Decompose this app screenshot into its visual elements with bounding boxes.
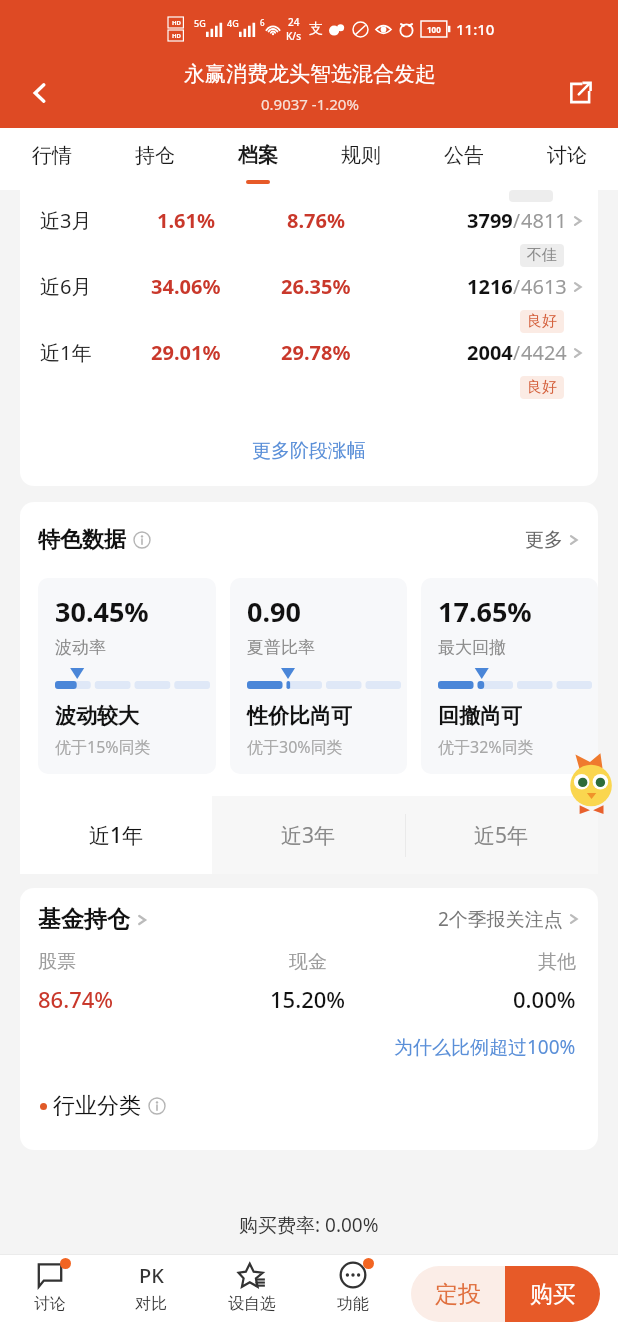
- staticText: 最大回撤: [438, 637, 506, 658]
- button[interactable]: 更多阶段涨幅: [20, 400, 598, 486]
- staticText: 17.65%: [438, 593, 532, 630]
- staticText: 4613: [521, 273, 567, 300]
- staticText: 波动较大: [55, 703, 139, 729]
- button[interactable]: 行情: [0, 128, 103, 190]
- button[interactable]: 规则: [309, 128, 412, 190]
- staticText: 4G: [227, 17, 239, 29]
- staticText: /: [513, 340, 521, 366]
- button[interactable]: 定投: [411, 1266, 505, 1322]
- button[interactable]: 更多: [525, 528, 580, 552]
- staticText: 0.00%: [513, 984, 576, 1014]
- button[interactable]: 讨论: [0, 1255, 100, 1332]
- staticText: 优于15%同类: [55, 736, 151, 758]
- staticText: 30.45%: [55, 593, 149, 630]
- staticText: 29.78%: [281, 339, 351, 366]
- staticText: 基金持仓: [38, 905, 130, 934]
- staticText: /: [513, 274, 521, 300]
- staticText: 2个季报关注点: [438, 906, 563, 932]
- staticText: 2004: [467, 339, 513, 366]
- button[interactable]: 设自选: [201, 1255, 302, 1332]
- staticText: 5G: [194, 17, 206, 29]
- staticText: HD: [172, 32, 181, 40]
- staticText: PK: [139, 1262, 164, 1289]
- staticText: 近3年: [281, 821, 336, 850]
- button[interactable]: 功能: [302, 1255, 403, 1332]
- button[interactable]: 讨论: [515, 128, 618, 190]
- staticText: 良好: [527, 378, 557, 397]
- button[interactable]: PK: [100, 1255, 201, 1332]
- staticText: 性价比尚可: [247, 703, 352, 729]
- button[interactable]: 近3月: [20, 202, 598, 268]
- staticText: 近5年: [474, 821, 529, 850]
- staticText: 6: [260, 17, 265, 28]
- staticText: 近3月: [40, 207, 92, 234]
- staticText: 夏普比率: [247, 637, 315, 658]
- staticText: /: [513, 208, 521, 234]
- staticText: 1.61%: [157, 207, 215, 234]
- staticText: 4424: [521, 339, 567, 366]
- staticText: 优于30%同类: [247, 736, 343, 758]
- staticText: 100: [427, 24, 441, 35]
- staticText: 良好: [527, 312, 557, 331]
- button[interactable]: 近6月: [20, 268, 598, 334]
- button[interactable]: 近1年: [20, 334, 598, 400]
- staticText: 设自选: [228, 1294, 276, 1314]
- button[interactable]: 2个季报关注点: [438, 906, 580, 932]
- staticText: 15.20%: [270, 984, 346, 1014]
- staticText: 更多: [525, 528, 563, 552]
- staticText: 11:10: [456, 19, 495, 39]
- button[interactable]: Share: [558, 71, 602, 115]
- staticText: 行情: [32, 143, 72, 168]
- button[interactable]: 0.90: [230, 578, 407, 774]
- staticText: 功能: [337, 1294, 369, 1314]
- staticText: 8.76%: [287, 207, 345, 234]
- button[interactable]: 近1年: [20, 796, 212, 874]
- staticText: 规则: [341, 143, 381, 168]
- staticText: 不佳: [527, 246, 557, 265]
- staticText: 34.06%: [151, 273, 221, 300]
- button[interactable]: 档案: [206, 128, 309, 190]
- staticText: 讨论: [547, 143, 587, 168]
- staticText: 近1年: [40, 339, 92, 366]
- staticText: 0.90: [247, 593, 301, 630]
- staticText: 股票: [38, 950, 76, 974]
- button[interactable]: 持仓: [103, 128, 206, 190]
- button[interactable]: Back: [18, 71, 62, 115]
- staticText: 购买: [530, 1280, 576, 1309]
- staticText: 购买费率: 0.00%: [239, 1212, 379, 1238]
- staticText: 29.01%: [151, 339, 221, 366]
- staticText: 持仓: [135, 143, 175, 168]
- button[interactable]: 购买: [505, 1266, 600, 1322]
- staticText: 1216: [467, 273, 513, 300]
- staticText: 讨论: [34, 1294, 66, 1314]
- staticText: 近6月: [40, 273, 92, 300]
- staticText: 档案: [238, 143, 278, 168]
- staticText: 优于32%同类: [438, 736, 534, 758]
- staticText: 行业分类: [53, 1092, 141, 1120]
- button[interactable]: 公告: [412, 128, 515, 190]
- staticText: 其他: [538, 950, 576, 974]
- button[interactable]: 近5年: [405, 796, 598, 874]
- staticText: 回撤尚可: [438, 703, 522, 729]
- staticText: 波动率: [55, 637, 106, 658]
- staticText: 24: [288, 15, 300, 29]
- staticText: 公告: [444, 143, 484, 168]
- button[interactable]: 基金持仓: [38, 905, 149, 934]
- staticText: HD: [172, 19, 181, 27]
- staticText: 4811: [521, 207, 567, 234]
- staticText: 特色数据: [38, 526, 126, 554]
- staticText: 近1年: [89, 821, 144, 850]
- staticText: 86.74%: [38, 984, 114, 1014]
- button[interactable]: 为什么比例超过100%: [394, 1034, 576, 1060]
- staticText: 26.35%: [281, 273, 351, 300]
- button[interactable]: 17.65%: [421, 578, 598, 774]
- staticText: 对比: [135, 1294, 167, 1314]
- button[interactable]: 30.45%: [38, 578, 216, 774]
- staticText: 永赢消费龙头智选混合发起: [184, 61, 436, 87]
- staticText: 0.9037 -1.20%: [261, 94, 359, 114]
- button[interactable]: 近3年: [212, 796, 405, 874]
- staticText: K/s: [286, 29, 302, 43]
- staticText: 定投: [435, 1280, 481, 1309]
- staticText: 为什么比例超过100%: [394, 1034, 576, 1060]
- staticText: 现金: [289, 950, 327, 974]
